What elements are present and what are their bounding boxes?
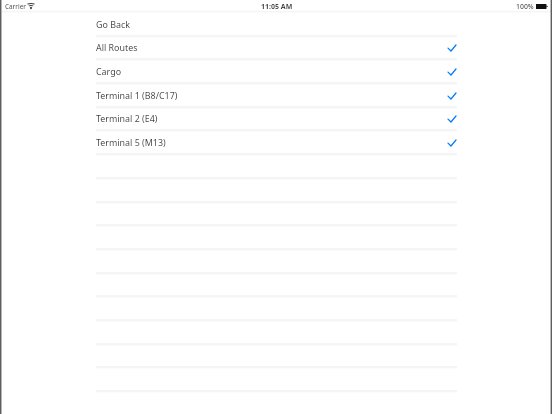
- other: Selected: [448, 116, 456, 122]
- staticText: Terminal 2 (E4): [96, 112, 158, 124]
- staticText: Go Back: [96, 18, 130, 30]
- staticText: All Routes: [96, 41, 138, 53]
- other: Selected: [448, 69, 456, 75]
- staticText: Terminal 1 (B8/C17): [96, 89, 178, 101]
- staticText: 100%: [516, 2, 534, 11]
- button[interactable]: Go Back: [0, 13, 552, 37]
- button[interactable]: Terminal 5 (M13): [0, 131, 552, 155]
- staticText: Cargo: [96, 65, 122, 77]
- staticText: 11:05 AM: [261, 2, 293, 12]
- button[interactable]: Terminal 2 (E4): [0, 107, 552, 131]
- other: Selected: [448, 93, 456, 99]
- button[interactable]: Terminal 1 (B8/C17): [0, 84, 552, 108]
- staticText: Carrier: [5, 2, 26, 11]
- button[interactable]: All Routes: [0, 36, 552, 60]
- other: Selected: [448, 140, 456, 146]
- staticText: Terminal 5 (M13): [96, 136, 166, 148]
- other: Battery 100 percent: [536, 4, 548, 9]
- button[interactable]: Cargo: [0, 60, 552, 84]
- other: Selected: [448, 45, 456, 51]
- other: Wi-Fi: [27, 3, 35, 9]
